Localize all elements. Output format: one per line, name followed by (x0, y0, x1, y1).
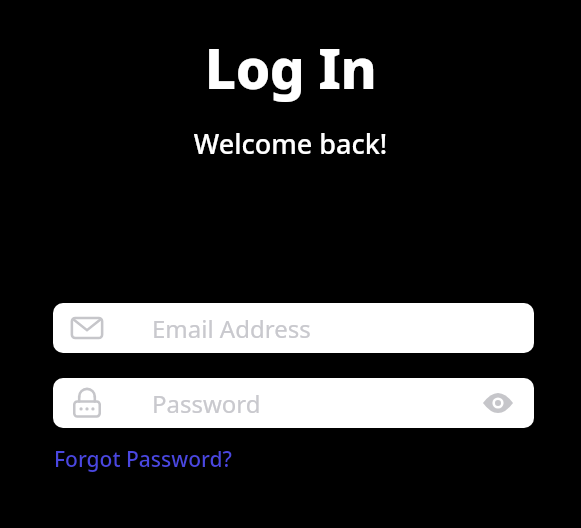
button[interactable]: Forgot Password? (53, 443, 233, 476)
staticText: Log In (0, 30, 581, 105)
staticText: Email Address (152, 312, 518, 345)
button[interactable]: Email Address input (53, 303, 534, 353)
button[interactable]: Show password (476, 381, 520, 425)
staticText: Password (152, 387, 476, 420)
staticText: Forgot Password? (54, 445, 232, 474)
staticText: Welcome back! (0, 125, 581, 162)
button[interactable]: Password input (53, 378, 534, 428)
